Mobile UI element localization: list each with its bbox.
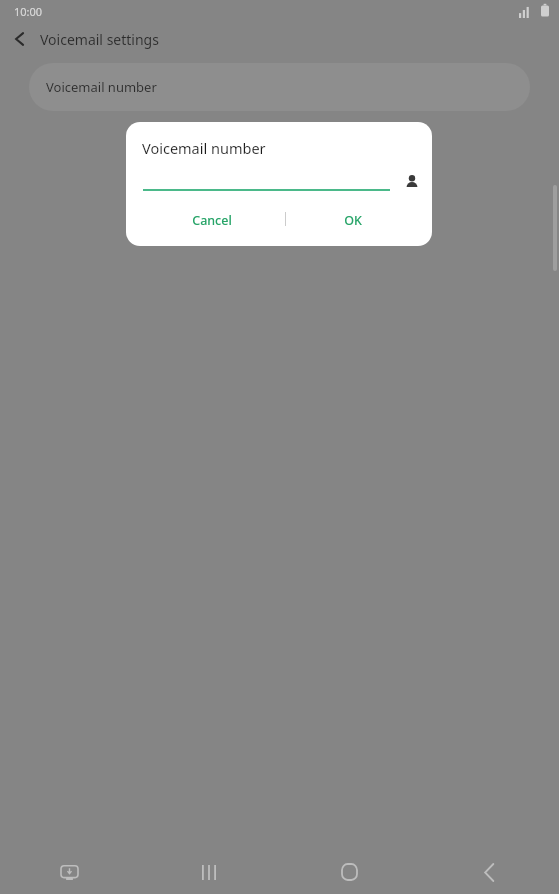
staticText: Voicemail number: [46, 78, 157, 96]
staticText: 10:00: [14, 4, 43, 19]
button[interactable]: Choose contact: [398, 168, 426, 196]
staticText: OK: [344, 212, 362, 229]
button[interactable]: Back: [419, 850, 559, 894]
button[interactable]: Hide keyboard: [0, 850, 139, 894]
staticText: Cancel: [192, 212, 232, 229]
button[interactable]: Back: [0, 22, 40, 56]
staticText: Voicemail settings: [40, 30, 159, 49]
button[interactable]: Recent apps: [139, 850, 279, 894]
button[interactable]: OK: [290, 206, 416, 234]
button[interactable]: Voicemail number: [29, 63, 530, 111]
button[interactable]: Home: [279, 850, 419, 894]
button[interactable]: Cancel: [142, 206, 282, 234]
staticText: Voicemail number: [142, 138, 266, 158]
